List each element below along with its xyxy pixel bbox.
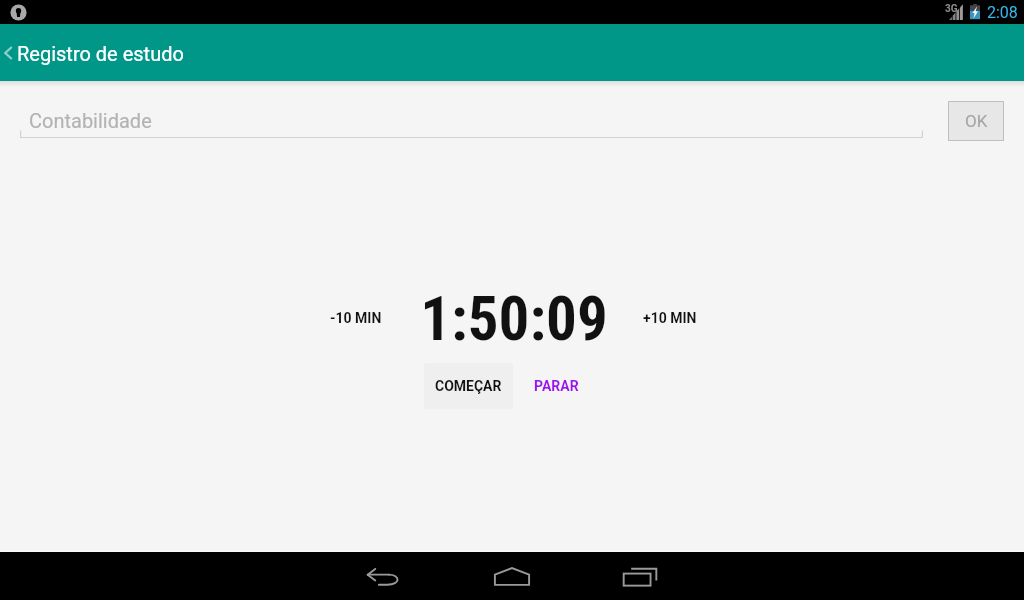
staticText: Registro de estudo bbox=[17, 42, 184, 65]
button[interactable]: COMEÇAR bbox=[424, 363, 513, 409]
staticText: +10 MIN bbox=[643, 310, 697, 326]
button[interactable]: Recent apps bbox=[592, 552, 688, 600]
button[interactable]: Home bbox=[464, 552, 560, 600]
staticText: Contabilidade bbox=[29, 109, 152, 132]
staticText: 1:50:09 bbox=[419, 283, 609, 354]
staticText: COMEÇAR bbox=[435, 378, 502, 394]
staticText: OK bbox=[965, 111, 988, 131]
button[interactable]: PARAR bbox=[524, 363, 588, 409]
button[interactable]: +10 MIN bbox=[636, 301, 704, 335]
button[interactable]: Contabilidade bbox=[20, 101, 923, 145]
staticText: PARAR bbox=[534, 378, 579, 394]
button[interactable]: Navigate up bbox=[0, 24, 200, 81]
staticText: 2:08 bbox=[987, 3, 1018, 22]
button[interactable]: OK bbox=[948, 101, 1004, 141]
button[interactable]: Back bbox=[335, 552, 431, 600]
button[interactable]: -10 MIN bbox=[322, 301, 390, 335]
staticText: -10 MIN bbox=[330, 310, 382, 326]
staticText: 3G bbox=[945, 3, 958, 15]
